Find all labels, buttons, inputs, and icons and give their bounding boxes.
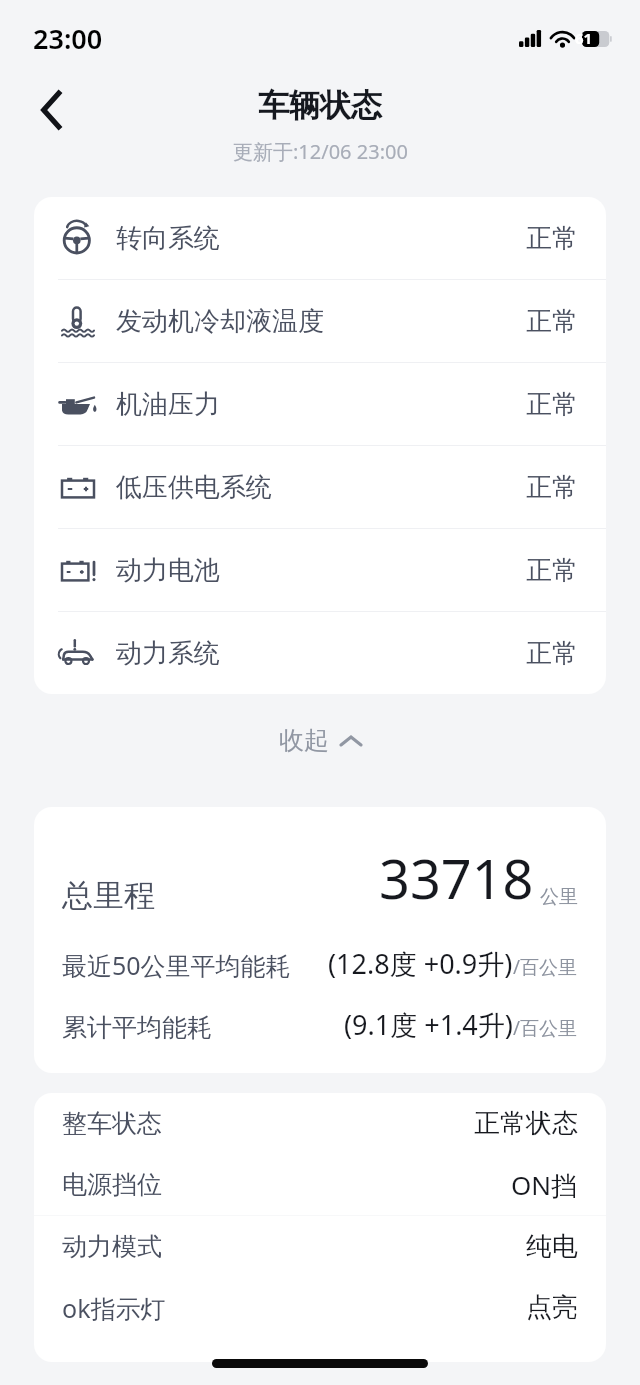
staticText: 总里程 xyxy=(62,876,155,915)
staticText: 23:00 xyxy=(33,20,103,57)
button[interactable]: 动力系统 xyxy=(34,612,606,694)
staticText: 更新于:12/06 23:00 xyxy=(233,138,408,165)
staticText: 正常 xyxy=(526,305,578,338)
staticText: /百公里 xyxy=(513,1015,578,1041)
staticText: 发动机冷却液温度 xyxy=(116,305,324,338)
staticText: 点亮 xyxy=(526,1291,578,1324)
staticText: 正常 xyxy=(526,388,578,421)
button[interactable]: 发动机冷却液温度 xyxy=(34,280,606,362)
staticText: 整车状态 xyxy=(62,1108,162,1139)
staticText: 公里 xyxy=(540,885,578,909)
staticText: 累计平均能耗 xyxy=(62,1012,212,1043)
staticText: 收起 xyxy=(279,725,329,756)
button[interactable]: 整车状态 xyxy=(34,1093,606,1154)
staticText: 33718 xyxy=(379,841,534,915)
staticText: 纯电 xyxy=(526,1230,578,1263)
button[interactable]: 收起 xyxy=(255,715,385,766)
staticText: (12.8度 +0.9升) xyxy=(328,945,513,982)
staticText: 车辆状态 xyxy=(258,86,382,125)
staticText: ok指示灯 xyxy=(62,1291,166,1325)
button[interactable]: 机油压力 xyxy=(34,363,606,445)
button[interactable]: 返回 xyxy=(22,80,82,140)
staticText: (9.1度 +1.4升) xyxy=(344,1006,513,1043)
staticText: /百公里 xyxy=(513,954,578,980)
staticText: 转向系统 xyxy=(116,222,220,255)
staticText: ON挡 xyxy=(511,1167,578,1203)
button[interactable]: 动力模式 xyxy=(34,1216,606,1277)
staticText: 正常 xyxy=(526,222,578,255)
button[interactable]: 电源挡位 xyxy=(34,1154,606,1215)
staticText: 电源挡位 xyxy=(62,1169,162,1200)
button[interactable]: 低压供电系统 xyxy=(34,446,606,528)
button[interactable]: ok指示灯 xyxy=(34,1277,606,1338)
button[interactable]: 动力电池 xyxy=(34,529,606,611)
staticText: 正常 xyxy=(526,637,578,670)
staticText: 动力模式 xyxy=(62,1231,162,1262)
staticText: 低压供电系统 xyxy=(116,471,272,504)
staticText: 正常 xyxy=(526,471,578,504)
staticText: 动力电池 xyxy=(116,554,220,587)
button[interactable]: 转向系统 xyxy=(34,197,606,279)
staticText: 正常 xyxy=(526,554,578,587)
staticText: 正常状态 xyxy=(474,1107,578,1140)
staticText: 动力系统 xyxy=(116,637,220,670)
staticText: 61 xyxy=(575,28,593,48)
staticText: 最近50公里平均能耗 xyxy=(62,948,291,982)
staticText: 机油压力 xyxy=(116,388,220,421)
